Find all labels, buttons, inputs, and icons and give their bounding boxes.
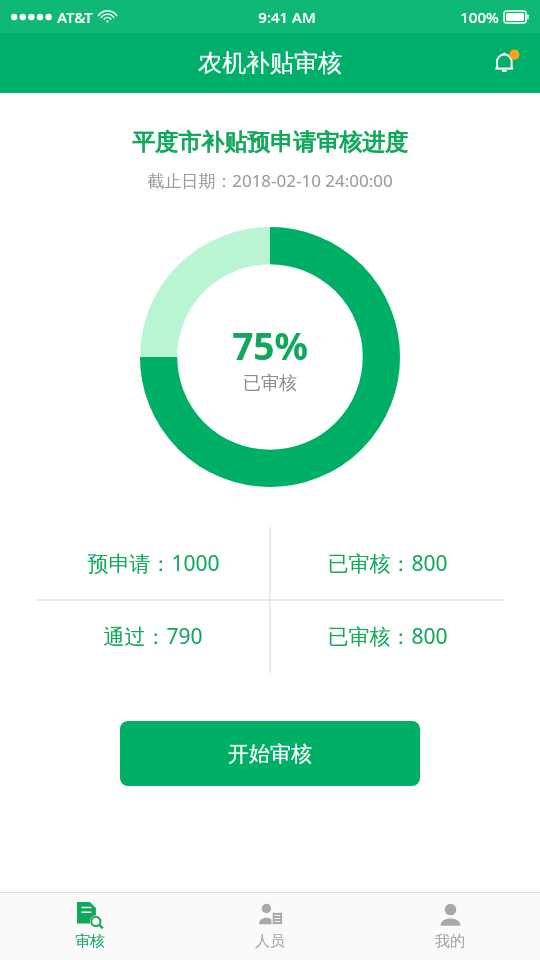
button[interactable]: 人员 [180,893,360,960]
staticText: 75% [232,320,308,370]
staticText: 9:41 AM [258,7,316,27]
button[interactable]: 通过：790 [36,600,270,673]
button[interactable]: 已审核：800 [270,527,504,600]
button[interactable]: 已审核：800 [270,600,504,673]
staticText: 人员 [255,932,285,951]
button[interactable]: 预申请：1000 [36,527,270,600]
staticText: 审核 [75,932,105,951]
staticText: 已审核 [243,372,297,395]
staticText: 农机补贴审核 [198,48,342,78]
staticText: AT&T [57,7,93,27]
staticText: 已审核：800 [327,622,448,651]
button[interactable]: 开始审核 [120,721,420,786]
staticText: 平度市补贴预申请审核进度 [132,128,408,157]
button[interactable]: 审核 [0,893,180,960]
staticText: 已审核：800 [327,549,448,578]
button[interactable]: 我的 [360,893,540,960]
staticText: 通过：790 [103,622,203,651]
staticText: 预申请：1000 [87,549,220,578]
staticText: 截止日期：2018-02-10 24:00:00 [147,169,393,192]
staticText: 100% [460,7,499,27]
staticText: 我的 [435,932,465,951]
staticText: 开始审核 [228,741,312,767]
button[interactable]: Notifications [484,41,528,85]
